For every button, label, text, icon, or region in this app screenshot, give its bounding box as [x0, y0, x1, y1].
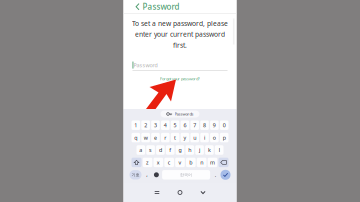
button[interactable]: 7: [190, 120, 199, 130]
staticText: t: [174, 134, 176, 141]
button[interactable]: Forgot your password?: [123, 76, 236, 82]
button[interactable]: .: [211, 170, 219, 179]
staticText: Passwords: [174, 111, 193, 117]
staticText: z: [146, 159, 149, 166]
staticText: f: [169, 146, 171, 154]
staticText: i: [204, 134, 205, 141]
staticText: g: [178, 146, 181, 154]
button[interactable]: 5: [171, 120, 179, 130]
button[interactable]: Passwords: [160, 110, 199, 117]
staticText: n: [200, 159, 203, 166]
button[interactable]: g: [176, 145, 184, 155]
staticText: 9: [213, 122, 216, 129]
staticText: 2: [144, 122, 147, 129]
staticText: 0: [223, 122, 226, 129]
staticText: ,: [146, 171, 147, 178]
button[interactable]: w: [141, 133, 150, 142]
staticText: k: [208, 146, 211, 154]
staticText: 6: [183, 122, 186, 129]
button[interactable]: p: [220, 133, 228, 142]
button[interactable]: Emoji: [152, 170, 161, 179]
staticText: 4: [164, 122, 167, 129]
staticText: first.: [173, 41, 187, 50]
button[interactable]: c: [164, 158, 174, 167]
staticText: u: [193, 134, 196, 141]
staticText: c: [168, 159, 171, 166]
button[interactable]: 8: [200, 120, 209, 130]
button[interactable]: u: [190, 133, 199, 142]
button[interactable]: q: [131, 133, 140, 142]
staticText: l: [219, 146, 220, 154]
staticText: o: [213, 134, 216, 141]
staticText: 3: [154, 122, 157, 129]
button[interactable]: z: [143, 158, 152, 167]
staticText: v: [178, 159, 181, 166]
staticText: Password: [133, 61, 157, 69]
staticText: To set a new password, please: [132, 19, 228, 28]
button[interactable]: Password: [123, 0, 185, 13]
button[interactable]: k: [205, 145, 214, 155]
staticText: a: [139, 146, 142, 154]
button[interactable]: x: [153, 158, 163, 167]
button[interactable]: h: [185, 145, 194, 155]
staticText: 5: [174, 122, 177, 129]
staticText: 8: [203, 122, 206, 129]
button[interactable]: y: [181, 133, 189, 142]
button[interactable]: o: [210, 133, 219, 142]
button[interactable]: v: [175, 158, 185, 167]
staticText: b: [189, 159, 192, 166]
staticText: e: [154, 134, 157, 141]
button[interactable]: 1: [131, 120, 140, 130]
staticText: s: [149, 146, 152, 154]
button[interactable]: 2: [141, 120, 150, 130]
staticText: r: [164, 134, 166, 141]
button[interactable]: 4: [161, 120, 170, 130]
button[interactable]: Delete: [218, 158, 228, 167]
button[interactable]: m: [208, 158, 217, 167]
button[interactable]: j: [195, 145, 204, 155]
button[interactable]: f: [166, 145, 174, 155]
staticText: 1: [134, 122, 137, 129]
button[interactable]: 9: [210, 120, 219, 130]
staticText: x: [157, 159, 160, 166]
staticText: enter your current password: [135, 30, 225, 39]
button[interactable]: l: [215, 145, 223, 155]
staticText: y: [183, 134, 186, 141]
button[interactable]: Recent apps: [145, 183, 168, 202]
button[interactable]: b: [186, 158, 196, 167]
staticText: Forgot your password?: [160, 76, 200, 81]
button[interactable]: 3: [151, 120, 160, 130]
button[interactable]: a: [136, 145, 145, 155]
button[interactable]: n: [197, 158, 206, 167]
button[interactable]: r: [161, 133, 170, 142]
staticText: w: [144, 134, 148, 141]
button[interactable]: 기호: [129, 170, 141, 179]
staticText: h: [188, 146, 191, 154]
staticText: d: [159, 146, 162, 154]
button[interactable]: 한국어: [162, 170, 210, 179]
staticText: q: [134, 134, 137, 141]
button[interactable]: Home: [168, 183, 191, 202]
staticText: m: [210, 159, 215, 166]
staticText: 기호: [131, 172, 139, 177]
button[interactable]: d: [156, 145, 165, 155]
button[interactable]: Shift: [131, 158, 141, 167]
button[interactable]: Back: [191, 183, 214, 202]
button[interactable]: s: [146, 145, 155, 155]
button[interactable]: t: [171, 133, 179, 142]
button[interactable]: i: [200, 133, 209, 142]
staticText: 7: [193, 122, 196, 129]
button[interactable]: ,: [143, 170, 151, 179]
staticText: j: [199, 146, 200, 154]
button[interactable]: 0: [220, 120, 228, 130]
button[interactable]: Enter: [220, 170, 230, 180]
button[interactable]: 6: [181, 120, 189, 130]
staticText: .: [215, 171, 216, 178]
staticText: p: [223, 134, 226, 141]
staticText: 한국어: [180, 172, 192, 177]
button[interactable]: e: [151, 133, 160, 142]
staticText: Password: [142, 1, 179, 12]
